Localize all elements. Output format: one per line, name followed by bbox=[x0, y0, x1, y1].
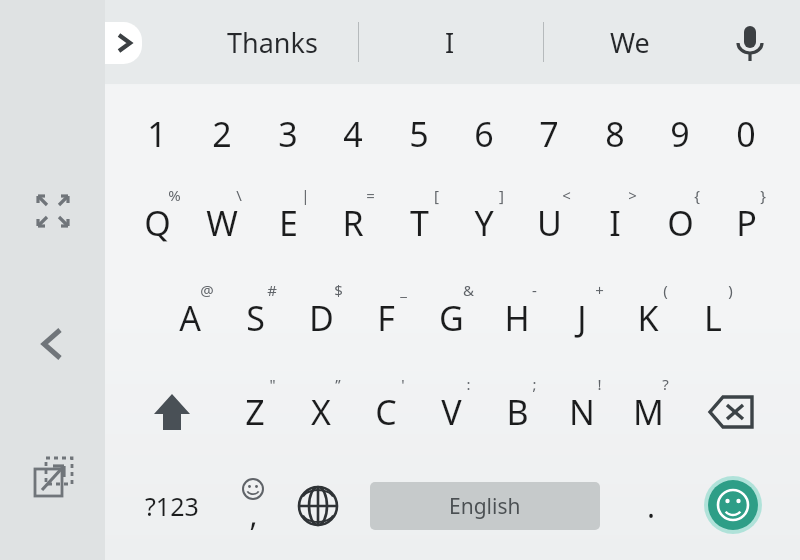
staticText: E bbox=[279, 200, 298, 246]
staticText: ?123 bbox=[145, 489, 199, 523]
button[interactable] bbox=[387, 179, 451, 267]
staticText: ? bbox=[662, 374, 669, 394]
button[interactable] bbox=[354, 368, 418, 456]
button[interactable] bbox=[583, 90, 647, 178]
staticText: R bbox=[342, 200, 364, 246]
button[interactable] bbox=[223, 368, 287, 456]
button[interactable] bbox=[321, 90, 385, 178]
staticText: U bbox=[537, 200, 562, 246]
button[interactable] bbox=[321, 179, 385, 267]
staticText: H bbox=[504, 295, 530, 341]
button[interactable]: Voice input bbox=[722, 15, 778, 71]
staticText: @ bbox=[200, 280, 214, 300]
staticText: L bbox=[704, 295, 722, 341]
button[interactable] bbox=[681, 274, 745, 362]
staticText: M bbox=[633, 389, 664, 435]
button[interactable]: Expand suggestions bbox=[105, 22, 142, 64]
staticText: ” bbox=[335, 374, 341, 394]
staticText: } bbox=[760, 185, 766, 205]
staticText: S bbox=[246, 295, 265, 341]
staticText: Thanks bbox=[227, 24, 318, 61]
button[interactable]: . bbox=[620, 470, 682, 542]
staticText: + bbox=[595, 280, 604, 300]
staticText: 7 bbox=[539, 111, 559, 157]
staticText: 0 bbox=[736, 111, 756, 157]
staticText: ; bbox=[532, 374, 537, 394]
button[interactable] bbox=[714, 90, 778, 178]
button[interactable] bbox=[452, 179, 516, 267]
staticText: V bbox=[441, 389, 462, 435]
button[interactable] bbox=[485, 274, 549, 362]
button[interactable] bbox=[125, 90, 189, 178]
button[interactable]: Pop out bbox=[26, 450, 80, 504]
staticText: 1 bbox=[147, 111, 167, 157]
button[interactable]: Change language bbox=[290, 478, 346, 534]
button[interactable] bbox=[550, 274, 614, 362]
button[interactable]: Emoji bbox=[702, 476, 764, 538]
button[interactable] bbox=[616, 274, 680, 362]
staticText: : bbox=[466, 374, 471, 394]
staticText: A bbox=[179, 295, 201, 341]
button[interactable] bbox=[419, 368, 483, 456]
staticText: _ bbox=[400, 280, 407, 300]
staticText: 6 bbox=[474, 111, 494, 157]
button[interactable] bbox=[354, 274, 418, 362]
button[interactable] bbox=[223, 274, 287, 362]
button[interactable]: ?123 bbox=[133, 470, 211, 542]
button[interactable] bbox=[648, 90, 712, 178]
staticText: % bbox=[168, 185, 181, 205]
button[interactable] bbox=[485, 368, 549, 456]
staticText: English bbox=[449, 492, 521, 521]
button[interactable]: Backspace bbox=[700, 372, 770, 452]
button[interactable] bbox=[190, 179, 254, 267]
staticText: We bbox=[610, 24, 650, 61]
staticText: N bbox=[569, 389, 595, 435]
staticText: > bbox=[628, 185, 637, 205]
staticText: I bbox=[445, 24, 455, 61]
button[interactable]: Thanks bbox=[170, 8, 375, 76]
button[interactable]: Full screen bbox=[26, 184, 80, 238]
staticText: < bbox=[562, 185, 571, 205]
button[interactable] bbox=[714, 179, 778, 267]
staticText: J bbox=[577, 295, 587, 341]
staticText: G bbox=[439, 295, 464, 341]
staticText: 3 bbox=[278, 111, 298, 157]
staticText: , bbox=[249, 494, 258, 535]
staticText: I bbox=[609, 200, 621, 246]
staticText: D bbox=[309, 295, 334, 341]
staticText: T bbox=[410, 200, 429, 246]
button[interactable] bbox=[616, 368, 680, 456]
button[interactable] bbox=[419, 274, 483, 362]
staticText: . bbox=[647, 486, 656, 527]
button[interactable] bbox=[222, 470, 284, 542]
button[interactable]: Back bbox=[26, 317, 80, 371]
button[interactable] bbox=[550, 368, 614, 456]
button[interactable]: I bbox=[380, 8, 520, 76]
button[interactable] bbox=[452, 90, 516, 178]
button[interactable] bbox=[648, 179, 712, 267]
button[interactable] bbox=[517, 179, 581, 267]
button[interactable] bbox=[125, 179, 189, 267]
staticText: " bbox=[269, 374, 276, 394]
staticText: B bbox=[506, 389, 529, 435]
staticText: W bbox=[206, 200, 238, 246]
button[interactable] bbox=[387, 90, 451, 178]
staticText: 5 bbox=[409, 111, 429, 157]
button[interactable] bbox=[517, 90, 581, 178]
staticText: K bbox=[637, 295, 659, 341]
button[interactable] bbox=[256, 90, 320, 178]
staticText: O bbox=[667, 200, 694, 246]
button[interactable]: English bbox=[370, 482, 600, 530]
staticText: Q bbox=[144, 200, 171, 246]
button[interactable]: Shift bbox=[140, 370, 204, 454]
staticText: 4 bbox=[343, 111, 363, 157]
button[interactable] bbox=[289, 368, 353, 456]
button[interactable] bbox=[583, 179, 647, 267]
button[interactable] bbox=[158, 274, 222, 362]
button[interactable] bbox=[256, 179, 320, 267]
button[interactable] bbox=[190, 90, 254, 178]
button[interactable] bbox=[289, 274, 353, 362]
staticText: = bbox=[366, 185, 375, 205]
button[interactable]: We bbox=[555, 8, 705, 76]
staticText: ! bbox=[597, 374, 602, 394]
